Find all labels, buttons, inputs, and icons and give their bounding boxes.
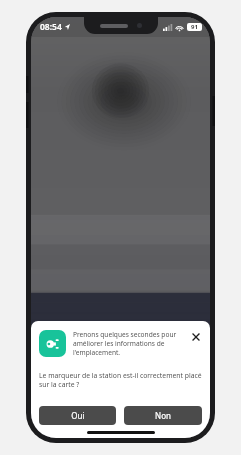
staticText: Prenons quelques secondes pour améliorer… bbox=[73, 330, 185, 357]
staticText: Le marqueur de la station est-il correct… bbox=[39, 371, 202, 389]
button[interactable] bbox=[39, 330, 66, 357]
staticText: Non bbox=[155, 410, 171, 421]
button[interactable]: Oui bbox=[39, 406, 116, 425]
staticText: Oui bbox=[71, 410, 85, 421]
button[interactable]: Fermer bbox=[189, 330, 202, 343]
staticText: 91 bbox=[191, 23, 198, 31]
staticText: 08:54 bbox=[40, 21, 62, 33]
button[interactable]: Non bbox=[124, 406, 202, 425]
